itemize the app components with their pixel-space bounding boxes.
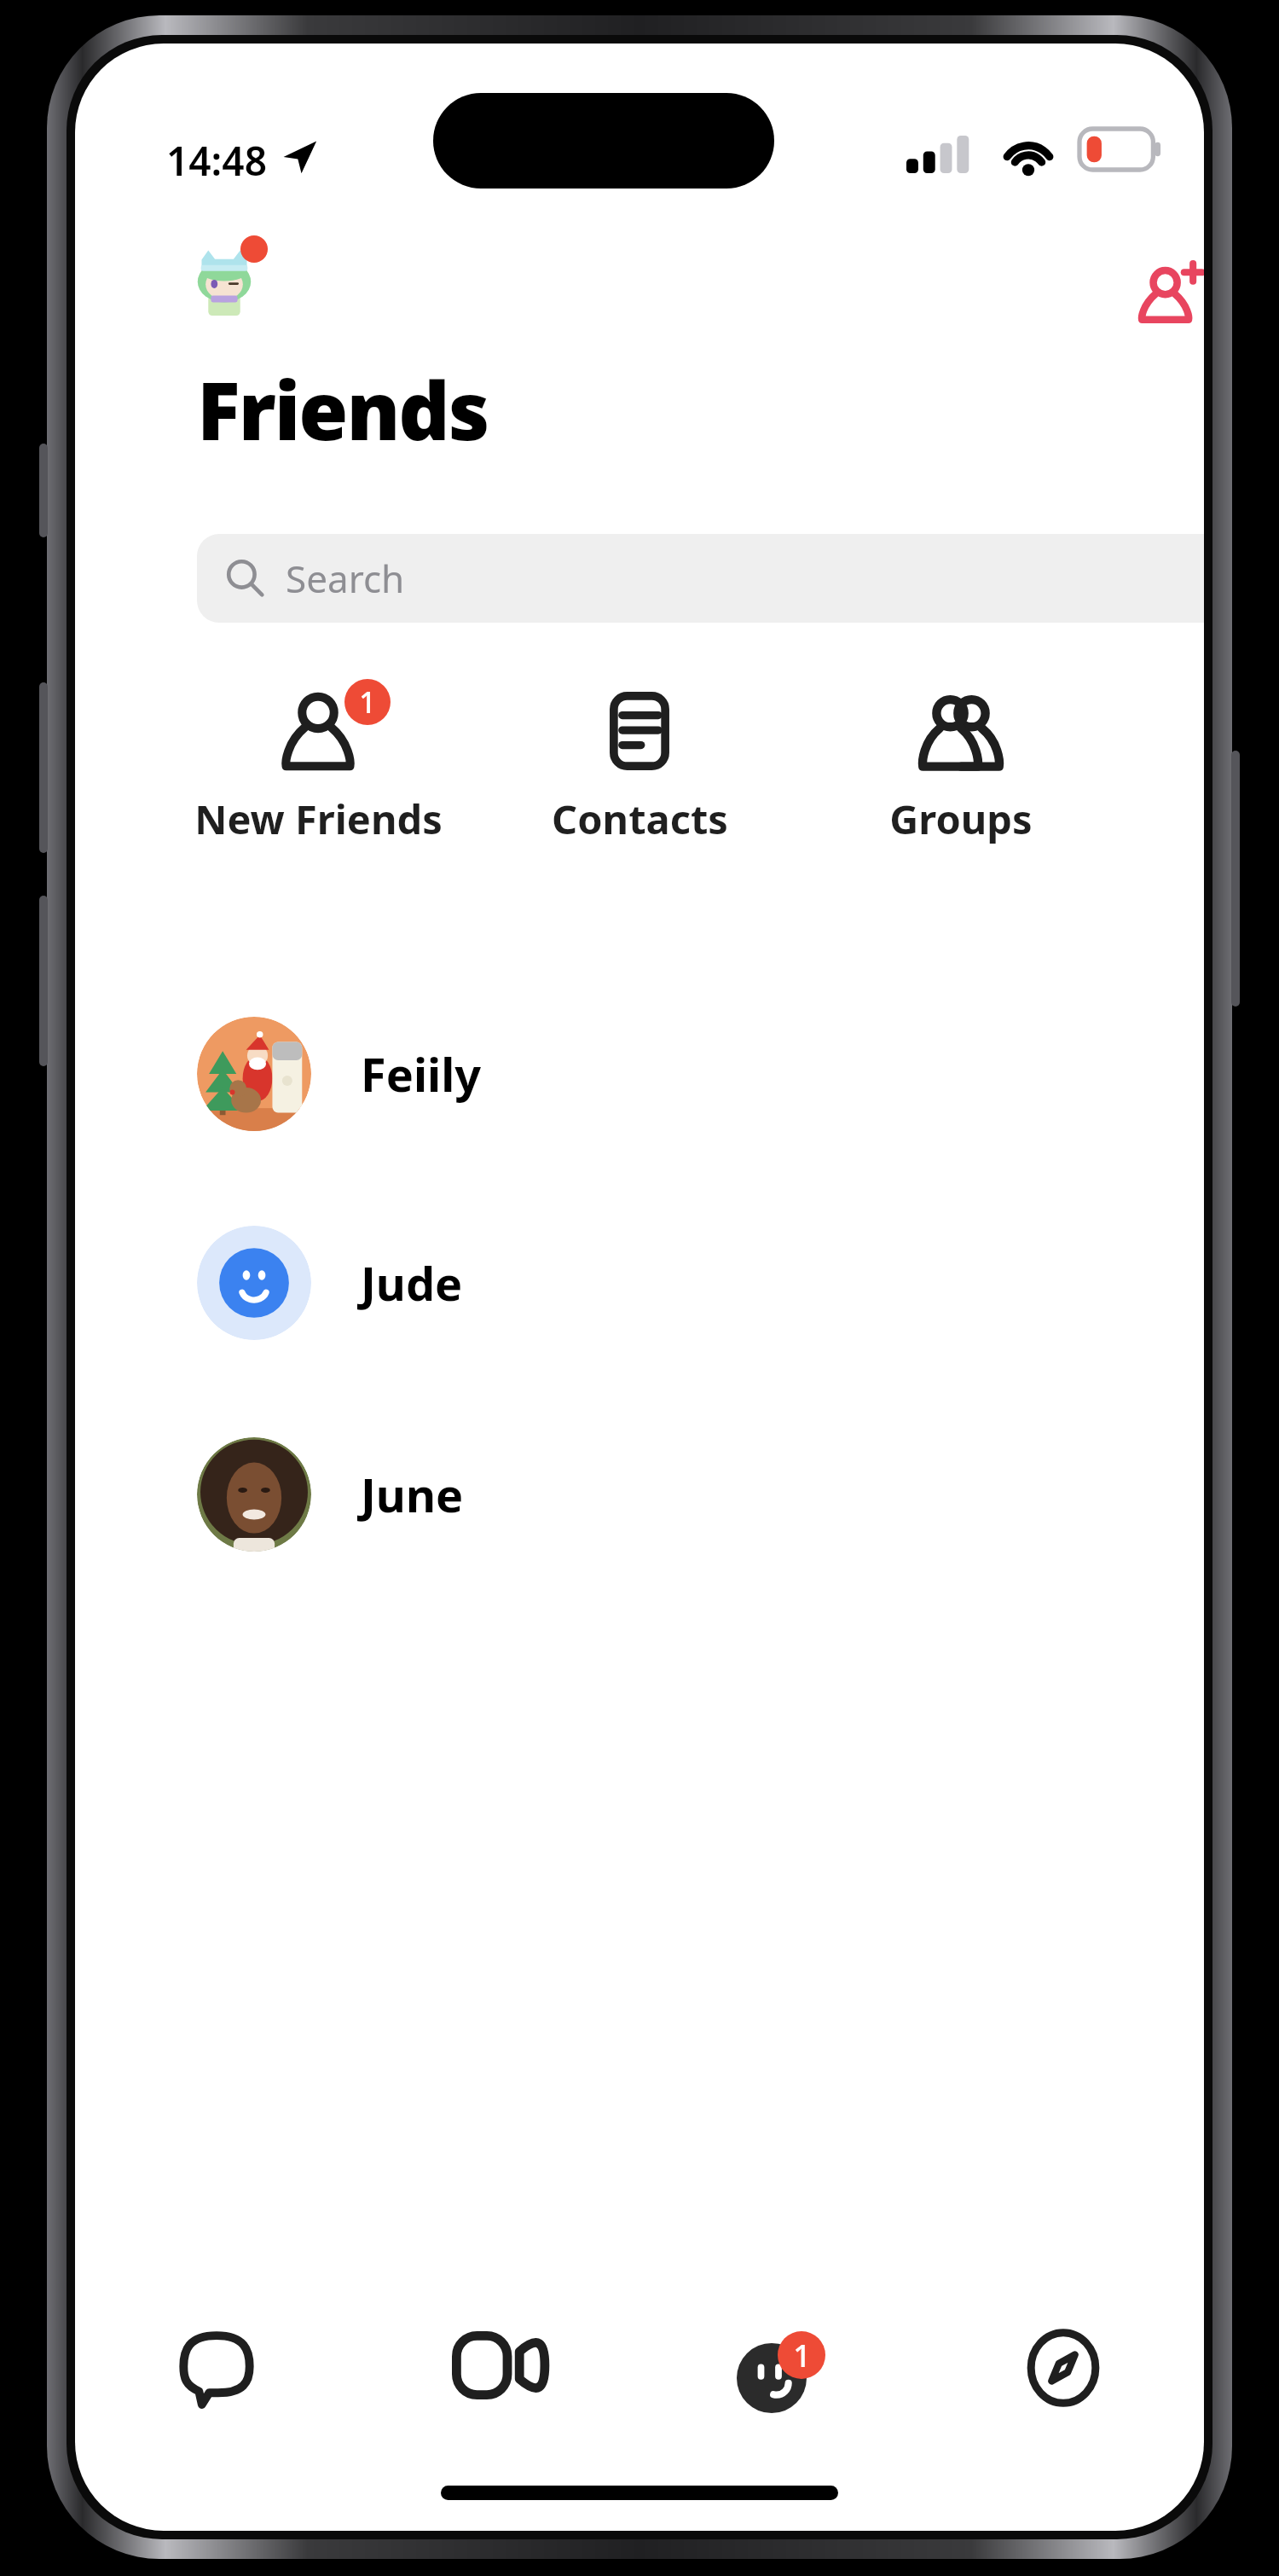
staticText: 14:48 [166,134,267,188]
button[interactable]: 1 [177,679,459,851]
staticText: June [361,1463,464,1526]
staticText: Friends [197,355,489,464]
button[interactable]: Search [197,534,1204,623]
staticText: Feiily [361,1042,482,1105]
button[interactable]: Calls [357,2312,639,2474]
button[interactable]: Discover [922,2312,1204,2474]
button[interactable]: Friends [639,2312,922,2474]
button[interactable]: Jude [75,1178,1204,1387]
button[interactable]: Contacts [499,679,780,851]
button[interactable]: Chats [75,2312,357,2474]
button[interactable]: Add friend [1126,247,1204,339]
staticText: Jude [361,1251,463,1314]
staticText: 1 [793,2335,811,2376]
button[interactable]: Profile [177,235,271,329]
button[interactable]: June [75,1390,1204,1598]
staticText: Groups [889,792,1033,846]
staticText: New Friends [194,792,443,846]
staticText: 1 [359,682,376,722]
staticText: Contacts [552,792,728,846]
staticText: Search [286,553,405,604]
button[interactable]: Feiily [75,969,1204,1178]
button[interactable]: Groups [820,679,1102,851]
